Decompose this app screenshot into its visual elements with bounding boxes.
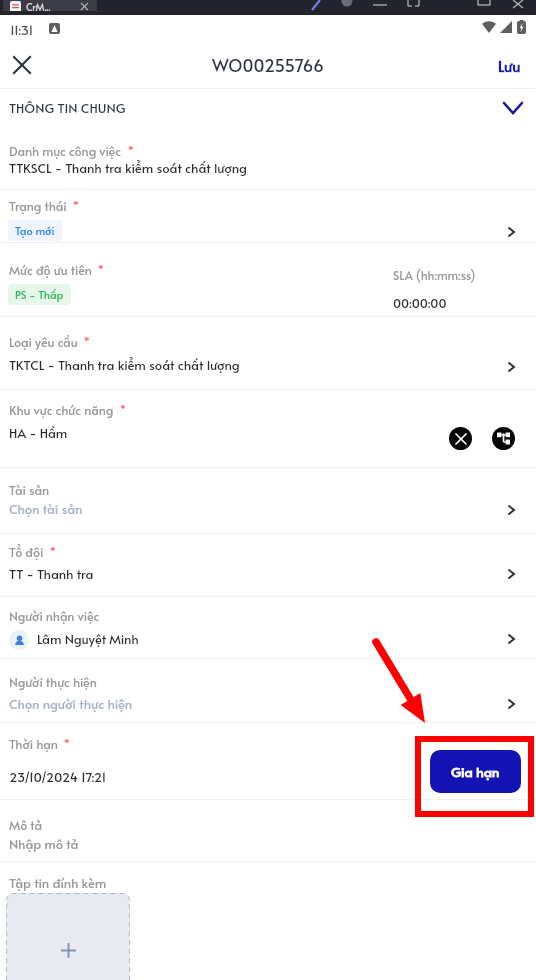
button[interactable]: Add attachment (6, 893, 130, 980)
button[interactable]: Gia hạn (430, 750, 521, 793)
staticText: * (50, 544, 56, 556)
staticText: SLA (hh:mm:ss) (393, 267, 476, 284)
button[interactable]: Choose from hierarchy (492, 427, 515, 450)
button[interactable]: Lưu (483, 45, 536, 86)
button[interactable] (0, 190, 536, 242)
staticText: Tổ đội (9, 543, 44, 560)
staticText: Chọn người thực hiện (9, 695, 133, 713)
staticText: 00:00:00 (393, 294, 447, 311)
staticText: * (73, 198, 79, 210)
staticText: Chọn tài sản (9, 500, 83, 518)
button[interactable] (0, 659, 536, 722)
staticText: Người nhận việc (9, 607, 100, 624)
button[interactable] (0, 317, 536, 389)
button[interactable] (0, 130, 536, 189)
button[interactable] (0, 800, 536, 862)
staticText: Lâm Nguyệt Minh (37, 630, 139, 648)
staticText: Danh mục công việc (9, 142, 122, 159)
staticText: 11:31 (10, 21, 34, 39)
staticText: TKTCL - Thanh tra kiểm soát chất lượng (9, 356, 240, 374)
button[interactable]: Close (0, 43, 44, 87)
staticText: Khu vực chức năng (9, 401, 114, 418)
staticText: THÔNG TIN CHUNG (9, 99, 126, 117)
staticText: Gia hạn (451, 762, 500, 781)
button[interactable] (0, 390, 536, 467)
button[interactable] (0, 597, 536, 658)
staticText: HA - Hầm (9, 424, 68, 442)
staticText: * (84, 334, 90, 346)
button[interactable]: Clear selection (449, 427, 472, 450)
staticText: Loại yêu cầu (9, 333, 78, 350)
staticText: Tạo mới (15, 223, 55, 238)
staticText: Nhập mô tả (9, 835, 79, 853)
button[interactable] (0, 89, 536, 130)
button[interactable] (0, 534, 536, 596)
staticText: Tài sản (9, 481, 50, 498)
staticText: * (64, 736, 70, 748)
staticText: PS - Thấp (15, 287, 64, 302)
staticText: Người thực hiện (9, 673, 97, 690)
staticText: TTKSCL - Thanh tra kiểm soát chất lượng (9, 159, 248, 177)
button[interactable] (0, 723, 536, 799)
staticText: * (128, 143, 134, 155)
staticText: 23/10/2024 17:21 (9, 768, 107, 786)
staticText: TT - Thanh tra (9, 565, 94, 583)
staticText: Thời hạn (9, 735, 58, 752)
staticText: Trạng thái (9, 197, 67, 214)
staticText: WO00255766 (212, 53, 324, 76)
staticText: Mô tả (9, 816, 43, 833)
staticText: CrM... (26, 0, 51, 11)
staticText: * (120, 402, 126, 414)
staticText: * (98, 262, 104, 274)
staticText: Tập tin đính kèm (9, 874, 107, 892)
staticText: Mức độ ưu tiên (9, 261, 92, 278)
button[interactable] (0, 468, 536, 533)
button[interactable] (0, 243, 536, 316)
staticText: Lưu (498, 55, 521, 76)
